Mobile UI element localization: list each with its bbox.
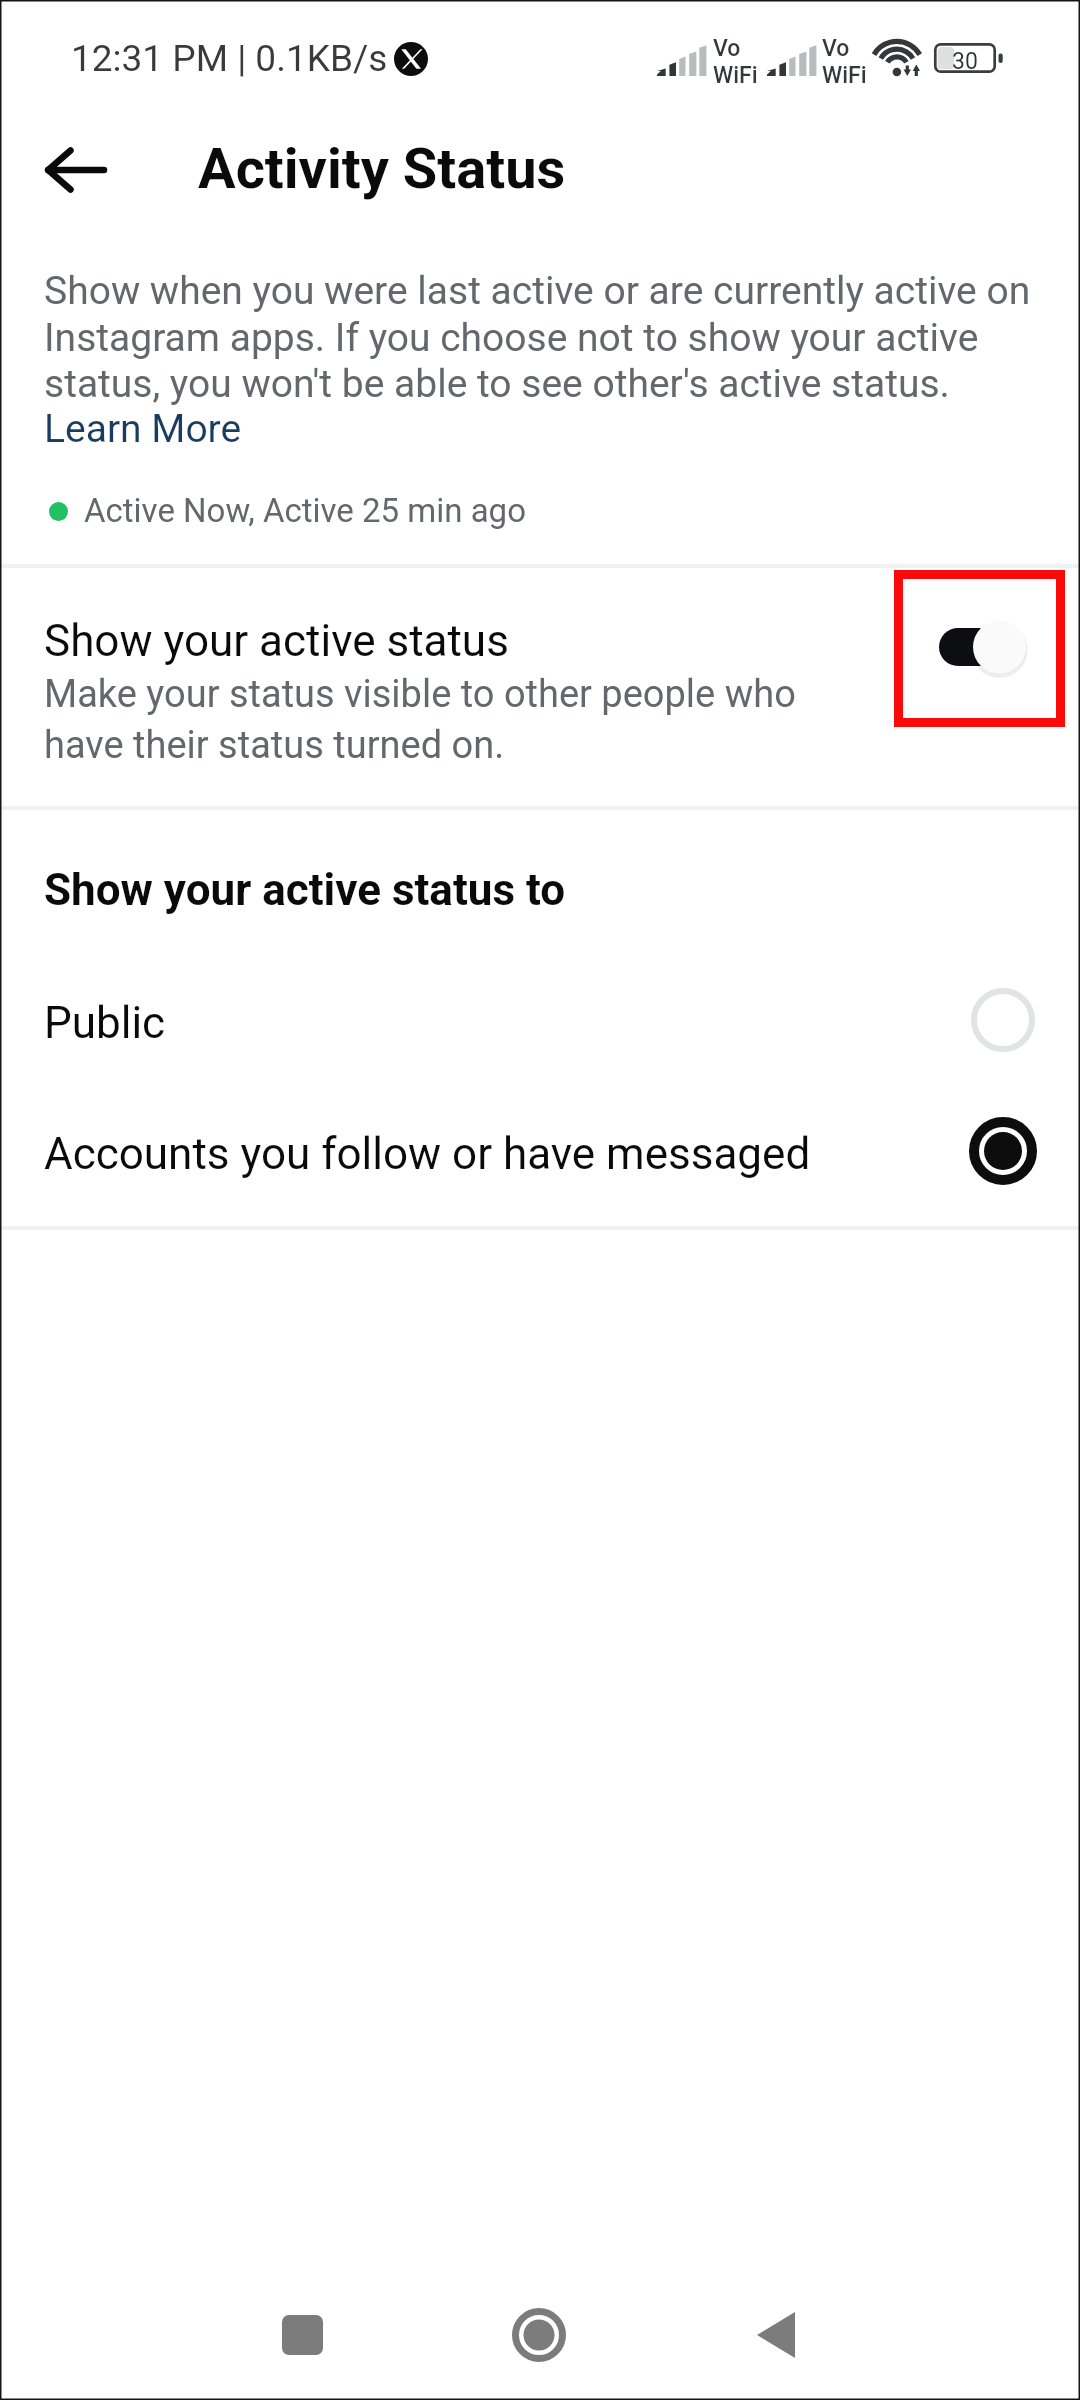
staticText: Make your status visible to other people… (44, 672, 834, 767)
button[interactable]: Back (22, 116, 130, 224)
staticText: Vo (713, 35, 741, 62)
staticText: Vo (822, 35, 850, 62)
staticText: Activity Status (198, 136, 566, 202)
staticText: WiFi (713, 62, 758, 89)
staticText: Show when you were last active or are cu… (44, 268, 1044, 406)
staticText: Show your active status to (44, 864, 566, 916)
button[interactable]: Back (726, 2285, 826, 2385)
button[interactable] (0, 962, 1080, 1078)
staticText: Accounts you follow or have messaged (44, 1128, 811, 1180)
staticText: 12:31 PM | 0.1KB/s (71, 37, 388, 80)
staticText: WiFi (822, 62, 867, 89)
staticText: Active Now, Active 25 min ago (84, 491, 526, 530)
staticText: Public (44, 997, 166, 1049)
button[interactable]: Recent apps (252, 2285, 352, 2385)
button[interactable]: Learn More (44, 406, 242, 452)
button[interactable] (0, 1093, 1080, 1209)
staticText: Show your active status (44, 615, 509, 667)
button[interactable]: Home (489, 2285, 589, 2385)
button[interactable]: Show your active status toggle (939, 618, 1031, 678)
button[interactable] (0, 566, 1080, 807)
staticText: 30 (952, 48, 978, 75)
